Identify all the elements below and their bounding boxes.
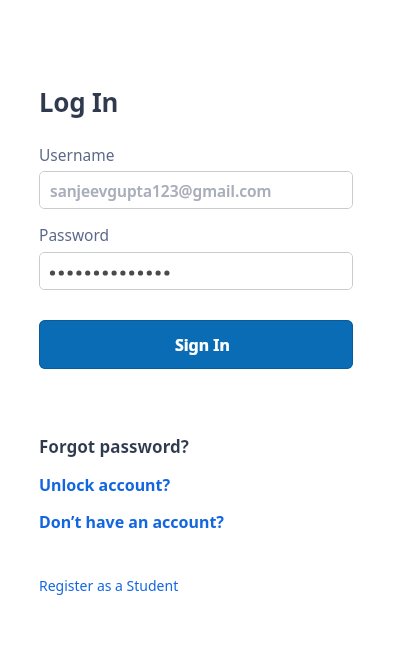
staticText: sanjeevgupta123@gmail.com bbox=[50, 180, 272, 201]
button[interactable] bbox=[39, 252, 353, 290]
staticText: Password bbox=[39, 224, 110, 245]
button[interactable]: Unlock account? bbox=[39, 474, 171, 496]
button[interactable]: Forgot password? bbox=[39, 435, 189, 458]
staticText: Log In bbox=[39, 84, 119, 119]
button[interactable]: Register as a Student bbox=[39, 576, 179, 595]
button[interactable]: Don’t have an account? bbox=[39, 511, 224, 533]
staticText: Sign In bbox=[175, 334, 230, 356]
staticText: Username bbox=[39, 144, 115, 165]
button[interactable]: sanjeevgupta123@gmail.com bbox=[39, 171, 353, 209]
button[interactable]: Sign In bbox=[39, 320, 353, 369]
